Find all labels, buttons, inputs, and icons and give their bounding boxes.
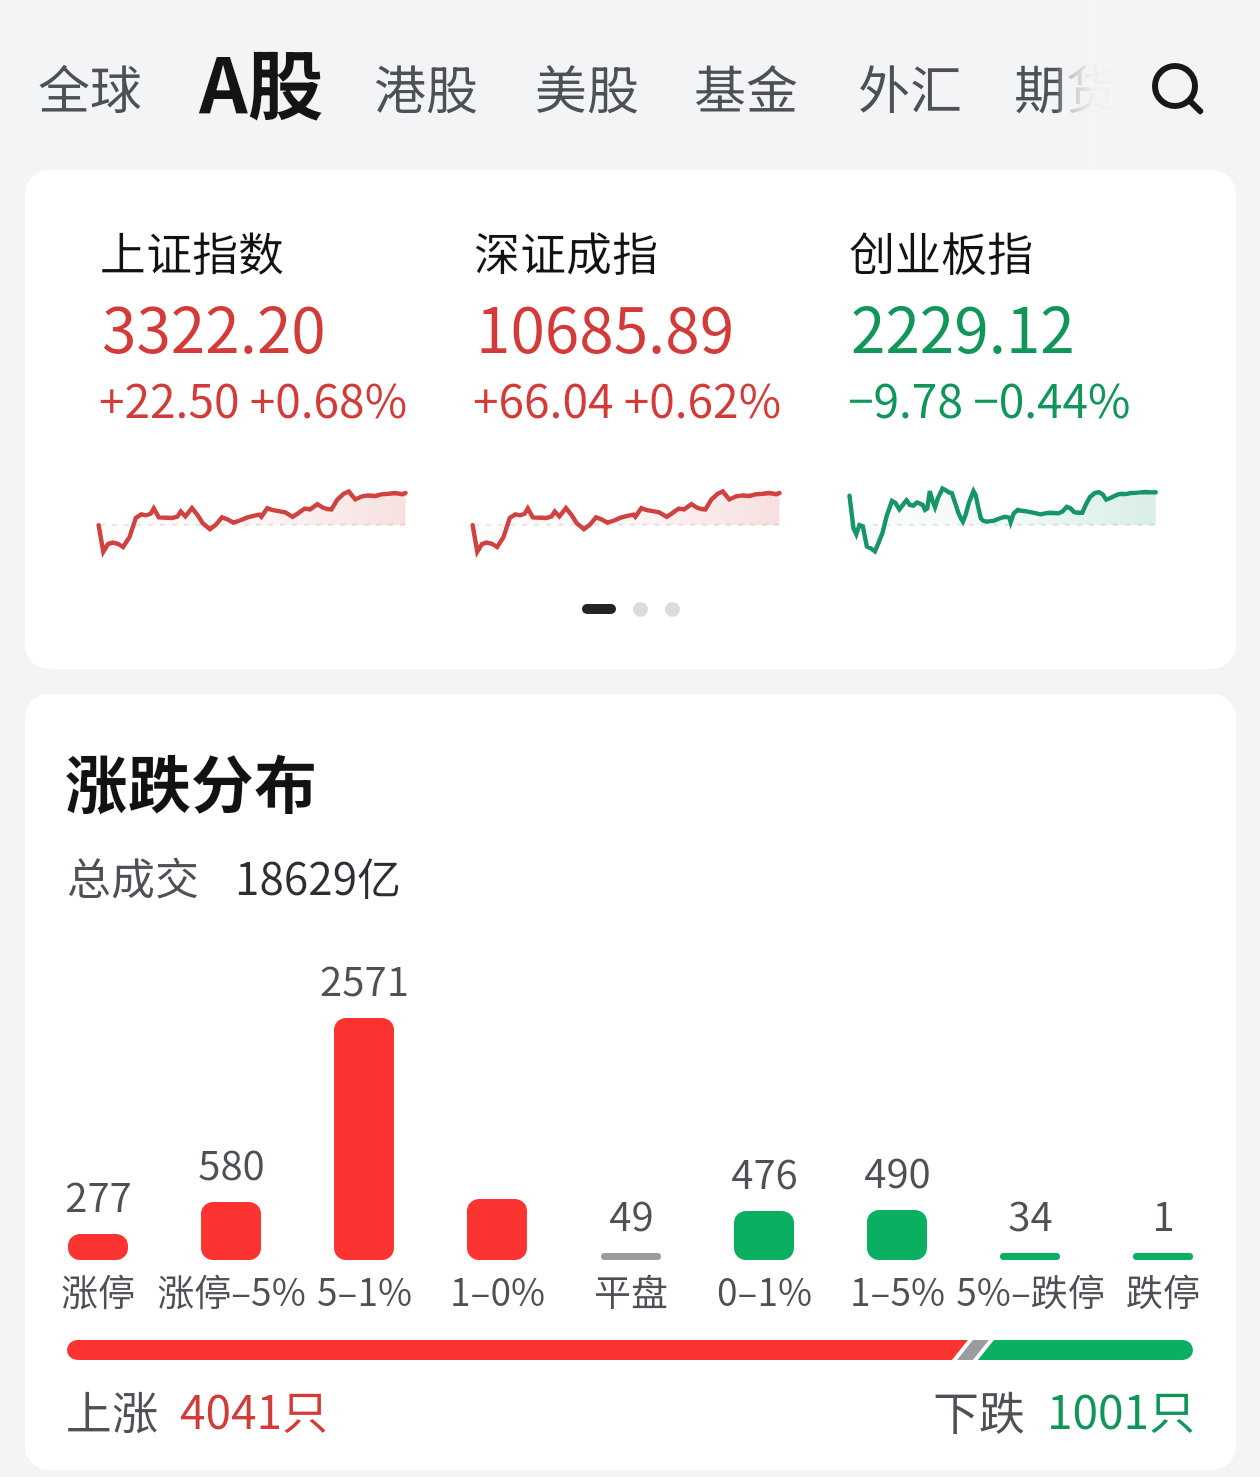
staticText: 美股 (535, 49, 640, 124)
staticText: 上涨 (66, 1377, 158, 1444)
button[interactable] (298, 944, 430, 1314)
button[interactable]: 美股 (508, 0, 660, 170)
staticText: 3322.20 (102, 281, 326, 371)
staticText: 港股 (374, 49, 479, 124)
staticText: +66.04 +0.62% (473, 365, 782, 432)
staticText: A股 (199, 26, 324, 136)
button[interactable]: 创业板指 (821, 170, 1236, 590)
button[interactable]: Page 1 of 3 (546, 580, 716, 638)
staticText: 1 (1152, 1185, 1175, 1243)
button[interactable]: 全球 (18, 0, 160, 170)
staticText: 基金 (694, 49, 799, 124)
staticText: 涨停 (61, 1263, 135, 1317)
button[interactable] (431, 944, 563, 1314)
button[interactable] (32, 944, 164, 1314)
staticText: 上证指数 (100, 218, 284, 285)
staticText: 1001只 (1047, 1376, 1196, 1443)
button[interactable]: Search (1143, 54, 1207, 118)
staticText: 涨跌分布 (65, 735, 317, 826)
staticText: 10685.89 (476, 281, 735, 371)
staticText: 2571 (320, 950, 409, 1008)
button[interactable]: 深证成指 (446, 170, 821, 590)
button[interactable] (831, 944, 963, 1314)
staticText: 4041只 (180, 1376, 329, 1443)
staticText: 5%–跌停 (956, 1263, 1105, 1317)
staticText: 2229.12 (851, 281, 1075, 371)
button[interactable] (1097, 944, 1229, 1314)
staticText: 0–1% (717, 1263, 812, 1317)
button[interactable]: 外汇 (829, 0, 983, 170)
staticText: 1–5% (850, 1263, 945, 1317)
staticText: 期货 (1014, 49, 1119, 124)
staticText: 总成交 (67, 844, 199, 908)
button[interactable] (565, 944, 697, 1314)
staticText: 476 (731, 1143, 798, 1201)
staticText: 5–1% (317, 1263, 412, 1317)
staticText: 深证成指 (474, 218, 658, 285)
button[interactable] (964, 944, 1096, 1314)
button[interactable]: 港股 (348, 0, 502, 170)
staticText: 跌停 (1126, 1263, 1200, 1317)
staticText: 外汇 (858, 49, 963, 124)
button[interactable] (165, 944, 297, 1314)
staticText: 49 (609, 1185, 654, 1243)
staticText: 1–0% (450, 1263, 545, 1317)
staticText: 涨停–5% (157, 1263, 306, 1317)
staticText: 下跌 (933, 1377, 1025, 1444)
staticText: 平盘 (594, 1263, 668, 1317)
staticText: 490 (864, 1142, 931, 1200)
button[interactable] (698, 944, 830, 1314)
staticText: 34 (1008, 1185, 1053, 1243)
button[interactable]: A股 (172, 0, 346, 170)
staticText: 全球 (38, 49, 143, 124)
button[interactable]: 涨跌分布 (25, 694, 1236, 1470)
staticText: 580 (198, 1134, 265, 1192)
button[interactable]: 上证指数 (25, 170, 400, 590)
staticText: −9.78 −0.44% (848, 365, 1131, 432)
staticText: 18629亿 (235, 844, 402, 908)
staticText: 277 (65, 1166, 132, 1224)
button[interactable]: 期货 (986, 0, 1140, 170)
staticText: 创业板指 (849, 218, 1033, 285)
staticText: +22.50 +0.68% (99, 365, 408, 432)
button[interactable]: 基金 (668, 0, 824, 170)
